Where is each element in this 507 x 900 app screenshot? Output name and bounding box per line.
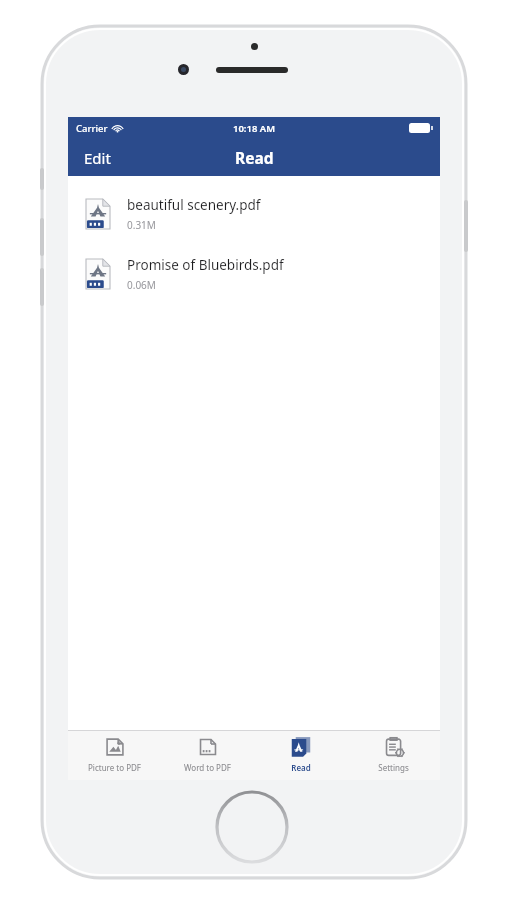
staticText: Word to PDF <box>184 762 231 773</box>
other: Settings <box>383 736 405 758</box>
staticText: 0.31M <box>127 218 156 232</box>
other: Word to PDF <box>197 736 219 758</box>
button[interactable]: Word to PDF <box>161 731 254 780</box>
staticText: Carrier <box>76 122 108 135</box>
staticText: Promise of Bluebirds.pdf <box>127 256 284 274</box>
button[interactable]: Settings <box>347 731 440 780</box>
staticText: beautiful scenery.pdf <box>127 196 261 214</box>
button[interactable]: Read <box>254 731 347 780</box>
other: Picture to PDF <box>104 736 126 758</box>
staticText: 0.06M <box>127 278 156 292</box>
staticText: Read <box>235 147 274 168</box>
button[interactable]: Promise of Bluebirds.pdf <box>68 244 440 304</box>
button[interactable]: Edit <box>74 142 121 174</box>
staticText: Read <box>291 762 311 773</box>
staticText: 10:18 AM <box>233 122 276 135</box>
button[interactable]: Picture to PDF <box>68 731 161 780</box>
staticText: Settings <box>378 762 409 773</box>
button[interactable]: beautiful scenery.pdf <box>68 184 440 244</box>
staticText: Picture to PDF <box>88 762 141 773</box>
staticText: Edit <box>84 148 111 168</box>
other: Read <box>290 736 312 758</box>
